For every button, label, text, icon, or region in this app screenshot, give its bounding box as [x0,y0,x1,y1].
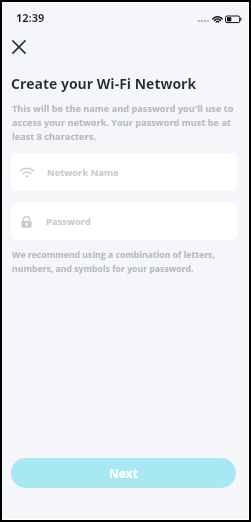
button[interactable]: Close [7,35,31,59]
button[interactable]: Password [11,202,238,240]
button[interactable]: Network Name [11,153,238,191]
button[interactable]: Next [11,458,236,488]
staticText: This will be the name and password you'l… [12,102,244,143]
staticText: 12:39 [16,10,45,25]
staticText: Next [109,465,138,481]
staticText: Create your Wi-Fi Network [11,74,197,93]
staticText: Network Name [47,166,119,179]
staticText: We recommend using a combination of lett… [12,249,232,275]
staticText: Password [46,215,91,228]
